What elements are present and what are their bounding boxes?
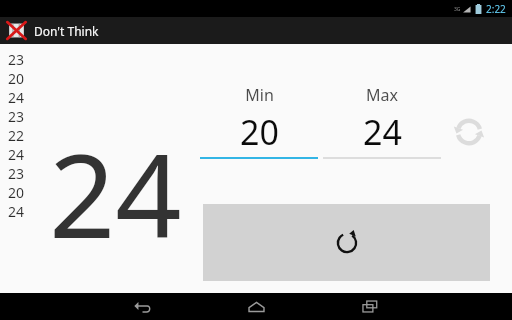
staticText: 20 [8,69,25,88]
button[interactable]: Min [200,84,318,159]
staticText: Max [366,84,398,106]
staticText: 24 [8,88,25,107]
staticText: Min [245,84,274,106]
button[interactable]: Max [323,84,441,159]
button[interactable]: Swap min and max [449,112,489,152]
staticText: 3G [454,6,461,13]
staticText: 20 [240,109,279,155]
staticText: 24 [363,109,402,155]
staticText: 23 [8,164,25,183]
staticText: 23 [8,107,25,126]
staticText: 22 [8,126,25,145]
button[interactable]: Generate new number [203,204,490,281]
staticText: 24 [8,145,25,164]
button[interactable]: Home [234,293,278,320]
button[interactable]: Back [120,293,164,320]
staticText: Don't Think [34,23,99,39]
staticText: 23 [8,50,25,69]
staticText: 24 [49,114,182,244]
staticText: 2:22 [486,2,506,16]
staticText: 20 [8,183,25,202]
button[interactable]: Recent apps [348,293,392,320]
staticText: 24 [8,202,25,221]
